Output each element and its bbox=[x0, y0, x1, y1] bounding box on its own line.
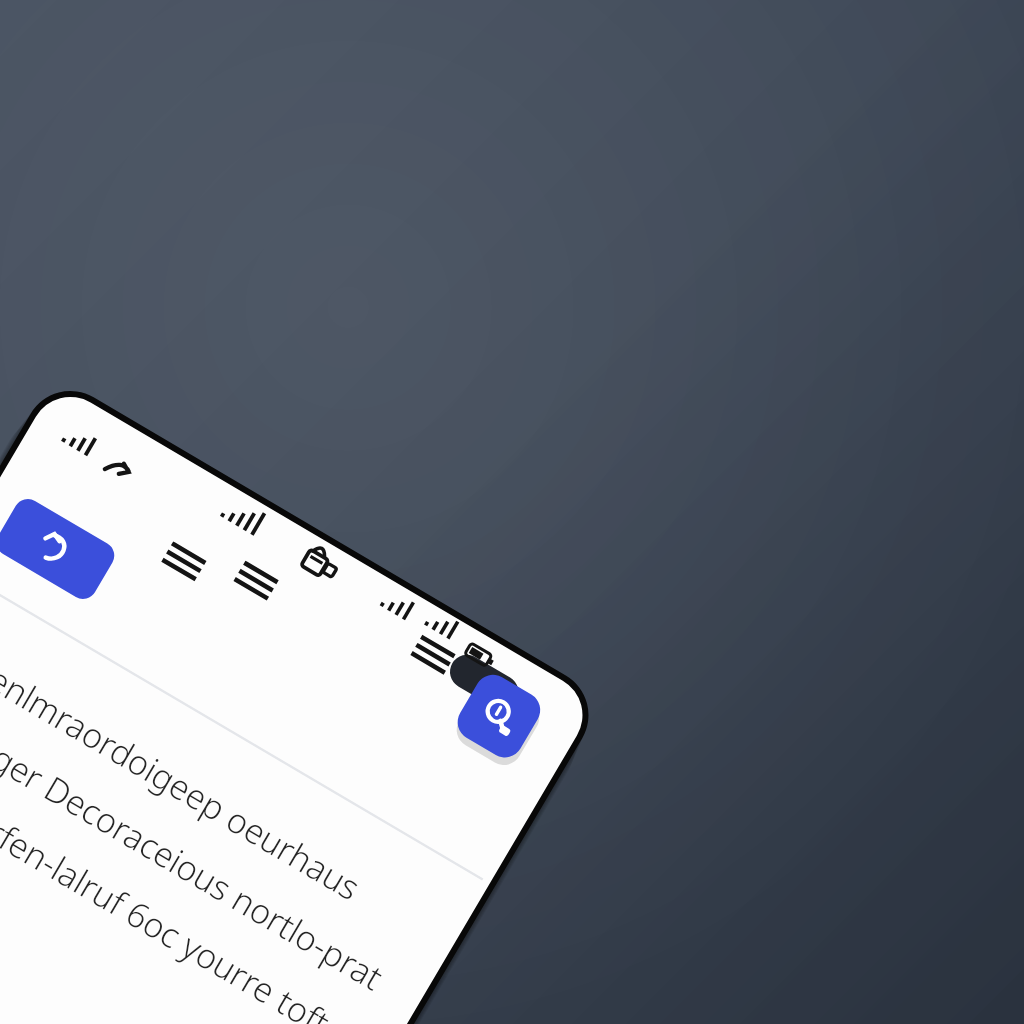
button[interactable]: Phone screen mockup bbox=[0, 0, 1024, 1024]
